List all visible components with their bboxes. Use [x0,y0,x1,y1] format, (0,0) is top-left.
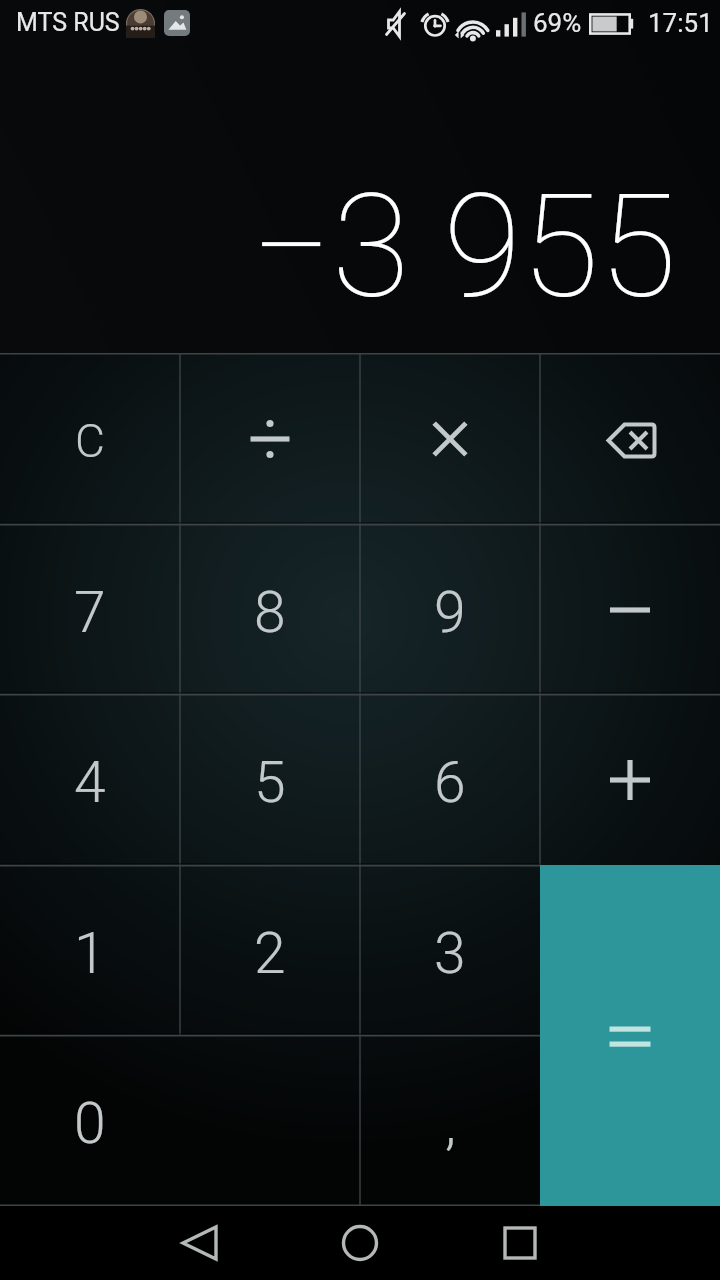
staticText: C [75,414,105,468]
button[interactable]: 0 [0,1035,180,1206]
staticText: 7 [74,579,106,646]
button[interactable]: Equals [540,865,720,1206]
staticText: 1 [74,920,106,987]
button[interactable]: 4 [0,694,180,865]
staticText: 6 [434,749,466,816]
button[interactable]: 9 [360,524,540,695]
staticText: , [445,1090,456,1157]
staticText: 0 [74,1090,106,1157]
staticText: 17:51 [648,8,713,38]
button[interactable]: 8 [180,524,360,695]
button[interactable]: Back [162,1206,238,1280]
button[interactable]: 2 [180,865,360,1036]
staticText: 9 [434,579,466,646]
button[interactable]: Divide [180,353,360,524]
button[interactable]: , [360,1035,540,1206]
button[interactable]: Backspace [540,353,720,524]
staticText: 2 [254,920,286,987]
button[interactable]: 1 [0,865,180,1036]
staticText: 5 [254,749,286,816]
button[interactable]: Plus [540,694,720,865]
button[interactable]: C [0,353,180,524]
button[interactable]: 6 [360,694,540,865]
button[interactable]: 7 [0,524,180,695]
staticText: 4 [74,749,106,816]
button[interactable]: 5 [180,694,360,865]
button[interactable]: Home [322,1206,398,1280]
staticText: 8 [254,579,286,646]
staticText: 69% [533,8,582,38]
staticText: −3 955 [251,164,677,330]
staticText: MTS RUS [16,8,120,37]
button[interactable]: Recents [482,1206,558,1280]
staticText: 3 [434,920,466,987]
button[interactable]: Multiply [360,353,540,524]
button[interactable]: Minus [540,524,720,695]
button[interactable]: 3 [360,865,540,1036]
